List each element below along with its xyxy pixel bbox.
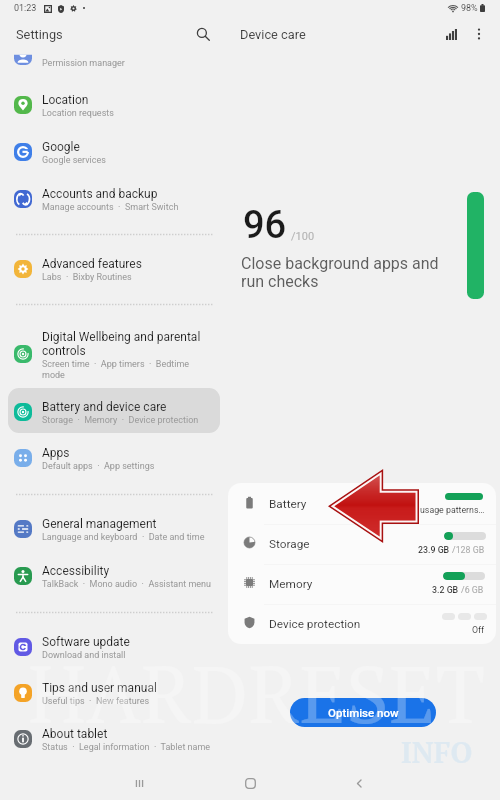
staticText: Apps xyxy=(42,446,70,460)
staticText: Download and install xyxy=(42,650,126,661)
staticText: controls xyxy=(42,344,86,358)
staticText: Labs · Bixby Routines xyxy=(42,272,132,283)
button[interactable]: Device protection xyxy=(228,603,496,643)
staticText: Settings xyxy=(16,27,63,42)
staticText: TalkBack · Mono audio · Assistant menu xyxy=(42,579,212,590)
staticText: 96 xyxy=(243,203,287,248)
staticText: Permission manager xyxy=(42,58,125,69)
staticText: HARDRESET xyxy=(28,640,485,746)
staticText: Device protection xyxy=(269,617,361,631)
button[interactable]: Recent apps xyxy=(128,772,150,794)
staticText: Accounts and backup xyxy=(42,187,158,201)
button[interactable]: Accessibility xyxy=(8,564,220,598)
button[interactable]: Storage xyxy=(228,523,496,563)
button[interactable]: About tablet xyxy=(8,727,220,761)
staticText: Software update xyxy=(42,635,130,649)
staticText: Storage · Memory · Device protection xyxy=(42,415,199,426)
staticText: Optimise now xyxy=(328,706,399,719)
staticText: Battery and device care xyxy=(42,400,167,414)
staticText: Status · Legal information · Tablet name xyxy=(42,742,211,753)
button[interactable]: Memory xyxy=(228,563,496,603)
staticText: Accessibility xyxy=(42,564,110,578)
button[interactable]: Battery and device care xyxy=(8,400,220,434)
staticText: Google xyxy=(42,140,80,154)
staticText: /100 xyxy=(291,230,315,243)
button[interactable]: Software update xyxy=(8,635,220,669)
button[interactable]: Usage statistics xyxy=(440,23,462,45)
staticText: About tablet xyxy=(42,727,108,741)
button[interactable]: Battery xyxy=(228,483,496,523)
staticText: Battery xyxy=(269,497,307,511)
staticText: 23.9 GB xyxy=(418,545,452,555)
staticText: usage patterns… xyxy=(420,505,485,515)
staticText: mode xyxy=(42,370,65,378)
staticText: 01:23 xyxy=(14,3,37,14)
staticText: Manage accounts · Smart Switch xyxy=(42,202,179,213)
button[interactable]: Back xyxy=(348,772,370,794)
button[interactable]: Tips and user manual xyxy=(8,681,220,715)
staticText: Google services xyxy=(42,155,106,166)
staticText: Location xyxy=(42,93,89,107)
button[interactable]: Google xyxy=(8,140,220,174)
button[interactable]: Advanced features xyxy=(8,257,220,291)
button[interactable]: Accounts and backup xyxy=(8,187,220,221)
button[interactable]: Search xyxy=(192,23,214,45)
button[interactable]: Home xyxy=(239,772,261,794)
staticText: /128 GB xyxy=(452,545,485,555)
staticText: /6 GB xyxy=(461,585,484,595)
button[interactable]: Apps xyxy=(8,446,220,480)
button[interactable]: Location xyxy=(8,93,220,127)
staticText: Tips and user manual xyxy=(42,681,157,695)
staticText: Storage xyxy=(269,537,310,551)
staticText: Default apps · App settings xyxy=(42,461,155,472)
staticText: Device care xyxy=(240,27,306,42)
button[interactable]: Optimise now xyxy=(290,698,436,727)
button[interactable]: Digital Wellbeing and parental xyxy=(8,330,220,378)
staticText: Language and keyboard · Date and time xyxy=(42,532,205,543)
staticText: Off xyxy=(472,625,485,635)
staticText: INFO xyxy=(401,733,473,771)
staticText: Screen time · App timers · Bedtime xyxy=(42,359,190,370)
staticText: 98% xyxy=(461,3,478,14)
staticText: Advanced features xyxy=(42,257,142,271)
button[interactable]: Permission manager xyxy=(8,58,220,92)
staticText: Close background apps and run checks xyxy=(241,254,439,291)
staticText: 3.2 GB xyxy=(432,585,461,595)
staticText: Location requests xyxy=(42,108,114,119)
staticText: Digital Wellbeing and parental xyxy=(42,330,201,344)
staticText: Useful tips · New features xyxy=(42,696,150,707)
staticText: General management xyxy=(42,517,157,531)
staticText: Memory xyxy=(269,577,313,591)
button[interactable]: More options xyxy=(468,23,490,45)
button[interactable]: General management xyxy=(8,517,220,551)
